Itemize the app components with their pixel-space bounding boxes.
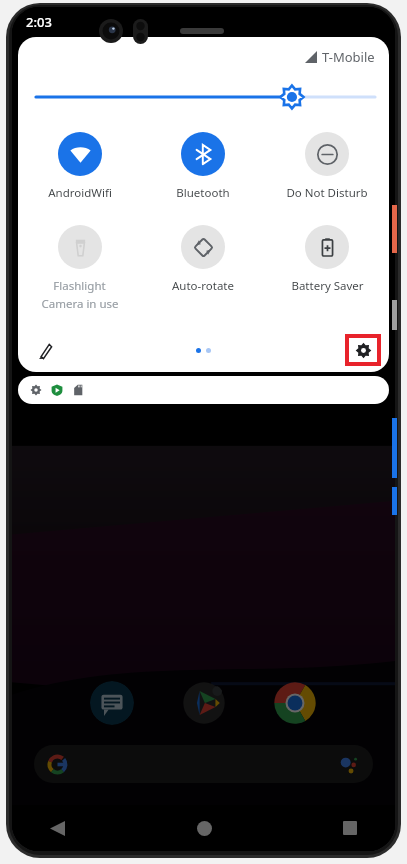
staticText: Camera in use (41, 296, 119, 312)
button[interactable]: Play Store (182, 681, 226, 725)
staticText: Auto-rotate (172, 278, 234, 294)
button[interactable] (18, 376, 389, 404)
button[interactable]: Flashlight (18, 223, 141, 314)
staticText: Do Not Disturb (286, 185, 368, 201)
button[interactable]: Chrome (273, 681, 317, 725)
staticText: Flashlight (53, 278, 106, 294)
staticText: Battery Saver (291, 278, 364, 294)
staticText: 2:03 (26, 13, 52, 31)
button[interactable]: Search (34, 745, 373, 783)
button[interactable]: Messages (90, 681, 134, 725)
button[interactable]: AndroidWifi (18, 130, 141, 203)
button[interactable]: Home (159, 805, 249, 851)
button[interactable]: Back (12, 805, 102, 851)
button[interactable]: Recent apps (305, 805, 395, 851)
button[interactable]: Settings (349, 338, 377, 362)
button[interactable]: Do Not Disturb (265, 130, 389, 203)
staticText: AndroidWifi (48, 185, 112, 201)
staticText: T-Mobile (322, 48, 375, 66)
button[interactable]: Battery Saver (265, 223, 389, 296)
staticText: Bluetooth (176, 185, 230, 201)
button[interactable]: Brightness (18, 86, 389, 108)
button[interactable]: Auto-rotate (141, 223, 265, 296)
button[interactable]: Bluetooth (141, 130, 265, 203)
button[interactable]: Edit tiles (26, 332, 62, 368)
